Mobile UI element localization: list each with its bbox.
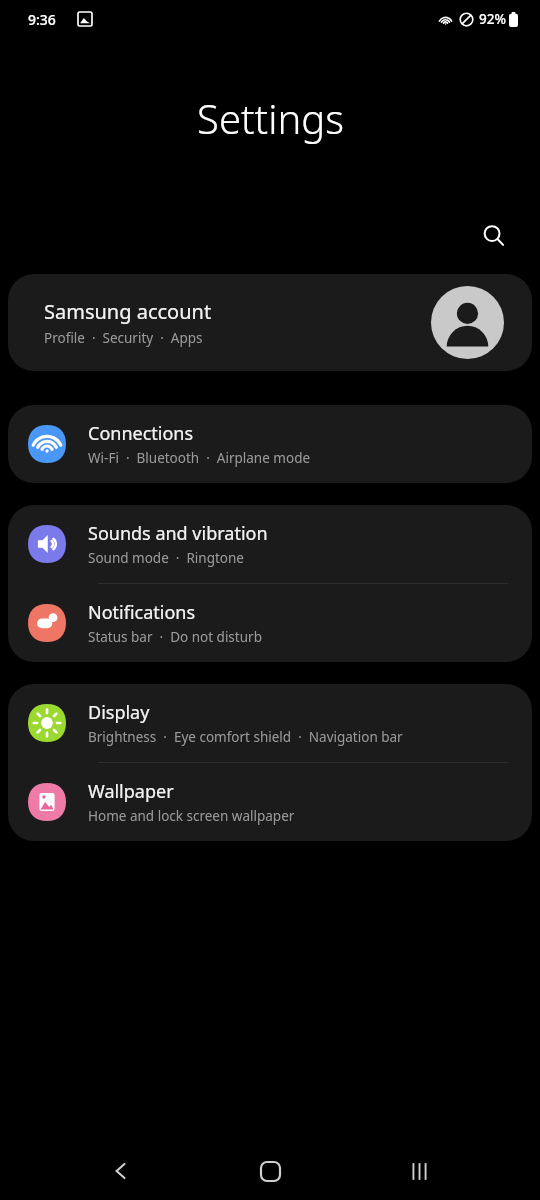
button[interactable]: Display — [8, 684, 532, 762]
button[interactable]: Recents — [391, 1143, 447, 1199]
staticText: Sound mode · Ringtone — [88, 549, 244, 567]
staticText: 9:36 — [28, 10, 56, 29]
staticText: Settings — [197, 91, 344, 145]
staticText: Brightness · Eye comfort shield · Naviga… — [88, 728, 403, 746]
staticText: Home and lock screen wallpaper — [88, 807, 295, 825]
staticText: Connections — [88, 421, 194, 446]
button[interactable]: Home — [242, 1143, 298, 1199]
staticText: Sounds and vibration — [88, 521, 268, 546]
staticText: 92% — [479, 10, 506, 28]
button[interactable]: Back — [93, 1143, 149, 1199]
staticText: Status bar · Do not disturb — [88, 628, 262, 646]
button[interactable]: Samsung account — [8, 274, 532, 371]
staticText: Notifications — [88, 600, 196, 625]
button[interactable]: Sounds and vibration — [8, 505, 532, 583]
button[interactable]: Notifications — [8, 584, 532, 662]
staticText: Wi-Fi · Bluetooth · Airplane mode — [88, 449, 311, 467]
staticText: Profile · Security · Apps — [44, 329, 203, 347]
staticText: Wallpaper — [88, 779, 174, 804]
button[interactable]: Wallpaper — [8, 763, 532, 841]
staticText: Samsung account — [44, 298, 212, 325]
staticText: Display — [88, 700, 150, 725]
button[interactable]: Connections — [8, 405, 532, 483]
button[interactable]: Search — [470, 212, 518, 260]
